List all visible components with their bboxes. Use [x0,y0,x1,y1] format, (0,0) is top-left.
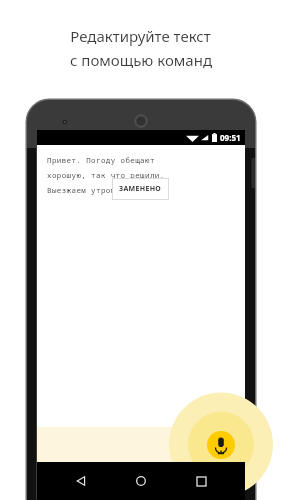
staticText: 10 [132,185,142,195]
staticText: 09:51 [220,132,241,143]
button[interactable]: Главный экран [125,465,157,497]
staticText: с помощью команд [70,50,212,70]
button[interactable]: Назад [65,465,97,497]
staticText: Привет. Погоду обещают [47,155,155,165]
staticText: хорошую, так что решили. [47,170,165,180]
button[interactable]: Голосовой ввод [207,431,235,459]
staticText: Выезжаем утром в [47,185,131,195]
staticText: ЗАМЕНЕНО [119,184,162,194]
button[interactable]: Обзор [185,465,217,497]
staticText: Редактируйте текст [70,26,211,46]
button[interactable]: ЗАМЕНЕНО [112,178,169,200]
